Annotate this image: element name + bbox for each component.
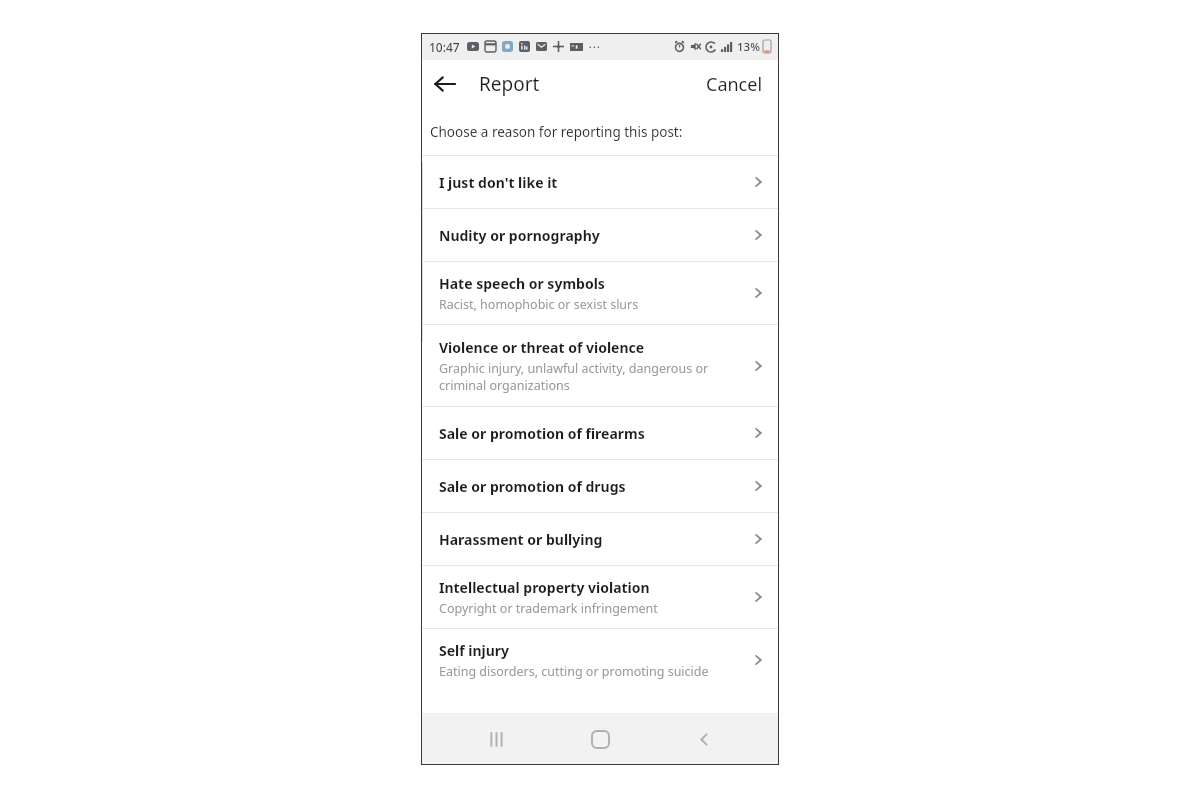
staticText: Nudity or pornography [439, 226, 600, 245]
button[interactable]: Harassment or bullying [421, 513, 779, 565]
button[interactable]: I just don't like it [421, 156, 779, 208]
staticText: Racist, homophobic or sexist slurs [439, 296, 639, 313]
button[interactable]: Recent apps [469, 713, 525, 765]
staticText: Report [479, 71, 540, 97]
button[interactable]: Sale or promotion of firearms [421, 407, 779, 459]
staticText: Hate speech or symbols [439, 274, 605, 293]
staticText: ⋯ [588, 40, 600, 54]
staticText: Eating disorders, cutting or promoting s… [439, 663, 709, 680]
staticText: Graphic injury, unlawful activity, dange… [439, 360, 709, 394]
staticText: I just don't like it [439, 173, 558, 192]
button[interactable]: Violence or threat of violence [421, 325, 779, 406]
button[interactable]: Self injury [421, 629, 779, 691]
staticText: 10:47 [429, 39, 460, 55]
staticText: Self injury [439, 641, 510, 660]
button[interactable]: Back [421, 60, 469, 108]
staticText: Sale or promotion of firearms [439, 424, 645, 443]
staticText: Copyright or trademark infringement [439, 600, 658, 617]
button[interactable]: Sale or promotion of drugs [421, 460, 779, 512]
button[interactable]: Intellectual property violation [421, 566, 779, 628]
button[interactable]: Back [676, 713, 732, 765]
staticText: Choose a reason for reporting this post: [430, 123, 683, 141]
staticText: Sale or promotion of drugs [439, 477, 626, 496]
staticText: Violence or threat of violence [439, 338, 645, 357]
staticText: Intellectual property violation [439, 578, 650, 597]
staticText: 13% [737, 39, 760, 55]
staticText: Harassment or bullying [439, 530, 603, 549]
button[interactable]: Hate speech or symbols [421, 262, 779, 324]
staticText: Cancel [706, 72, 763, 97]
button[interactable]: Nudity or pornography [421, 209, 779, 261]
button[interactable]: Home [572, 713, 628, 765]
button[interactable]: Cancel [690, 60, 779, 108]
